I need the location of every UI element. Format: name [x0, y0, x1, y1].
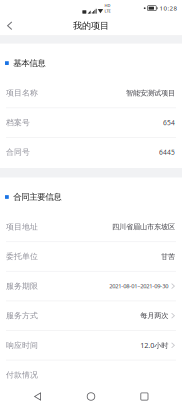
staticText: 四川省眉山市东坡区 — [112, 222, 175, 231]
staticText: 智能安测试项目 — [126, 88, 175, 98]
button[interactable]: Back — [0, 16, 20, 35]
button[interactable]: 合同号 — [0, 138, 182, 167]
staticText: 响应时间 — [6, 340, 38, 350]
staticText: 付款情况 — [6, 370, 38, 380]
staticText: 项目地址 — [6, 222, 38, 232]
button[interactable]: Back — [22, 386, 53, 407]
staticText: LTE — [104, 8, 110, 14]
button[interactable]: 项目名称 — [0, 79, 182, 107]
button[interactable]: 服务期限 — [0, 272, 182, 300]
staticText: 合同主要信息 — [13, 192, 61, 202]
button[interactable]: 委托单位 — [0, 242, 182, 271]
button[interactable]: 档案号 — [0, 108, 182, 137]
staticText: 服务期限 — [6, 281, 38, 291]
staticText: HD — [104, 3, 110, 8]
button[interactable]: 付款情况 — [0, 360, 182, 389]
staticText: 基本信息 — [13, 58, 45, 68]
staticText: 委托单位 — [6, 251, 38, 261]
staticText: 合同号 — [6, 147, 30, 157]
button[interactable]: 响应时间 — [0, 331, 182, 360]
staticText: 每月两次 — [140, 311, 168, 320]
button[interactable]: Home — [75, 387, 107, 406]
staticText: 我的项目 — [73, 20, 109, 31]
staticText: 甘苦 — [161, 252, 175, 261]
staticText: 10:28 — [159, 4, 177, 12]
button[interactable]: 服务方式 — [0, 301, 182, 330]
staticText: 档案号 — [6, 118, 30, 127]
staticText: 服务方式 — [6, 311, 38, 321]
staticText: 12.0小时 — [140, 340, 168, 350]
staticText: 2021-08-01~2021-09-30 — [109, 282, 168, 290]
button[interactable]: Recent apps — [129, 387, 160, 406]
button[interactable]: 项目地址 — [0, 212, 182, 241]
staticText: 6445 — [159, 148, 175, 157]
staticText: 项目名称 — [6, 88, 38, 98]
staticText: 654 — [163, 118, 175, 127]
